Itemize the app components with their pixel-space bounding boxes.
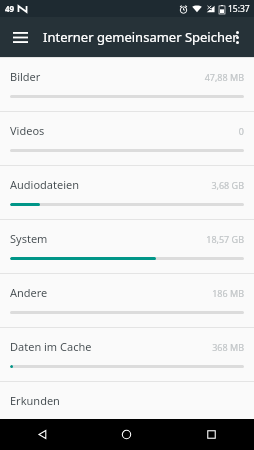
- staticText: 0: [238, 125, 244, 137]
- staticText: Audiodateien: [10, 177, 211, 192]
- staticText: Daten im Cache: [10, 339, 212, 354]
- staticText: 18,57 GB: [206, 233, 244, 245]
- button[interactable]: Audiodateien: [0, 166, 254, 219]
- staticText: Interner gemeinsamer Speicher: [43, 28, 238, 46]
- staticText: 15:37: [228, 3, 250, 15]
- button[interactable]: Back: [0, 419, 84, 450]
- button[interactable]: Erkunden: [0, 382, 254, 419]
- button[interactable]: Recent apps: [169, 419, 254, 450]
- staticText: 186 MB: [212, 287, 244, 299]
- staticText: Erkunden: [10, 393, 60, 408]
- staticText: Andere: [10, 285, 212, 300]
- button[interactable]: Andere: [0, 274, 254, 327]
- staticText: Bilder: [10, 69, 204, 84]
- staticText: 3,68 GB: [211, 179, 244, 191]
- button[interactable]: Home: [84, 419, 169, 450]
- button[interactable]: More options: [224, 24, 250, 50]
- button[interactable]: Navigation menu: [6, 23, 34, 51]
- button[interactable]: Videos: [0, 112, 254, 165]
- button[interactable]: Daten im Cache: [0, 328, 254, 381]
- staticText: 49: [5, 3, 15, 14]
- button[interactable]: Bilder: [0, 58, 254, 111]
- staticText: Videos: [10, 123, 238, 138]
- button[interactable]: System: [0, 220, 254, 273]
- staticText: 368 MB: [212, 341, 244, 353]
- staticText: 47,88 MB: [204, 71, 244, 83]
- staticText: System: [10, 231, 206, 246]
